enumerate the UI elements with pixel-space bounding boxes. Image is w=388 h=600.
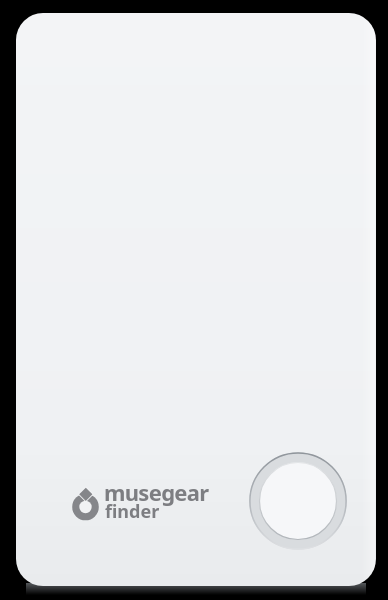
staticText: finder [105,499,160,524]
button[interactable] [249,452,347,550]
staticText: musegear [104,477,209,507]
